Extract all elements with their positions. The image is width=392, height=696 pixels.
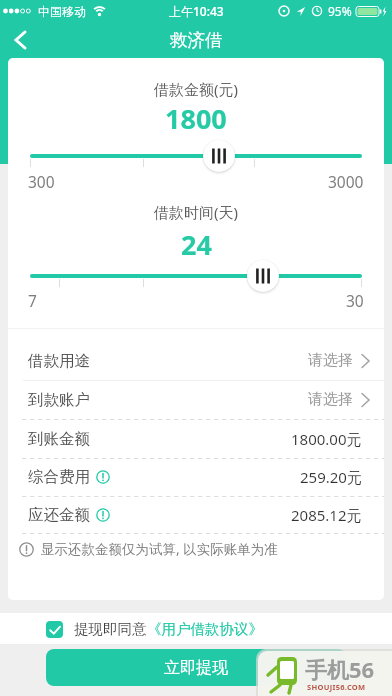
staticText: 2085.12元 [291,505,362,525]
staticText: 259.20元 [300,467,362,487]
button[interactable]: 到款账户 [8,380,384,419]
button[interactable] [6,26,34,54]
staticText: 中国移动 [38,4,86,19]
staticText: 1800 [165,100,227,132]
staticText: 到账金额 [28,429,90,449]
staticText: 借款用途 [28,351,90,371]
staticText: 救济借 [170,29,223,51]
staticText: 请选择 [308,351,353,370]
button[interactable]: 应还金额 [8,496,384,533]
staticText: 3000 [328,171,364,192]
staticText: 提现即同意 [74,620,147,638]
button[interactable]: 到账金额 [8,419,384,458]
staticText: 24 [181,226,212,259]
staticText: 立即提现 [164,658,228,678]
button[interactable] [247,260,279,292]
button[interactable]: 综合费用 [8,458,384,496]
staticText: SHOUJI56.COM [307,682,366,692]
button[interactable]: 借款用途 [8,341,384,380]
staticText: 30 [346,290,364,311]
staticText: 7 [28,290,37,311]
staticText: 到款账户 [28,390,90,410]
staticText: 借款时间(天) [154,202,239,222]
staticText: 95% [328,3,352,19]
staticText: 借款金额(元) [154,79,239,99]
staticText: 请选择 [308,390,353,409]
staticText: 上午10:43 [169,3,224,19]
staticText: 显示还款金额仅为试算, 以实际账单为准 [41,540,278,558]
button[interactable]: 提现即同意 [46,620,263,638]
staticText: 应还金额 [28,505,90,525]
staticText: 综合费用 [28,467,90,487]
staticText: 手机56 [305,654,375,684]
staticText: 300 [28,171,55,192]
button[interactable]: 立即提现 [46,649,346,686]
button[interactable] [203,140,235,172]
staticText: 《用户借款协议》 [147,620,263,638]
staticText: 1800.00元 [291,429,362,449]
